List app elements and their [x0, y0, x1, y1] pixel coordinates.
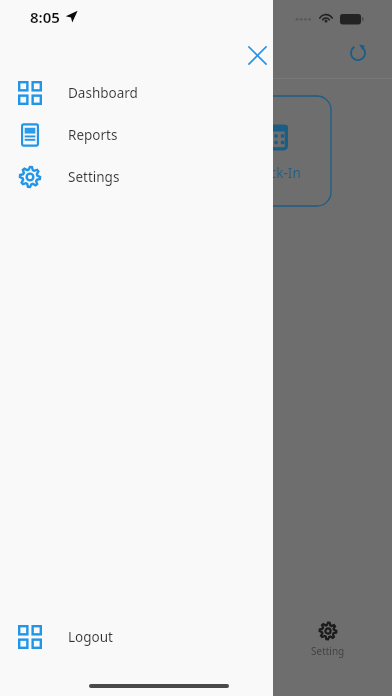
staticText: 8:05: [30, 7, 60, 27]
button[interactable]: Refresh: [343, 38, 373, 68]
staticText: Settings: [68, 168, 120, 186]
button[interactable]: Setting: [311, 621, 345, 658]
button[interactable]: Logout: [0, 616, 273, 658]
button[interactable]: Settings: [0, 156, 273, 198]
staticText: Logout: [68, 628, 113, 646]
staticText: Dashboard: [68, 84, 138, 102]
button[interactable]: Close menu: [238, 36, 276, 74]
button[interactable]: Reports: [0, 114, 273, 156]
button[interactable]: Dashboard: [0, 72, 273, 114]
staticText: Reports: [68, 126, 118, 144]
staticText: Check-In: [245, 164, 301, 182]
staticText: Setting: [311, 644, 345, 658]
